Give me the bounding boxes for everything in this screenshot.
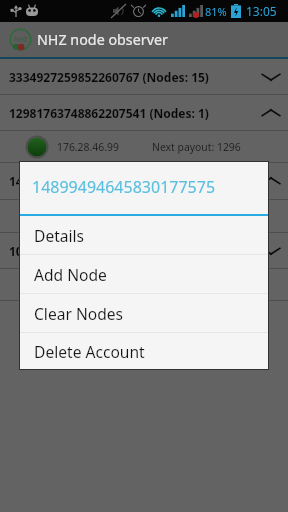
button[interactable]: Add Node	[20, 255, 268, 293]
other: Collapse	[260, 170, 282, 192]
staticText: 12981763748862207541 (Nodes: 1)	[9, 105, 209, 121]
button[interactable]: 176.28.46.99	[0, 131, 288, 162]
button[interactable]: Delete Account	[20, 333, 268, 369]
button[interactable]: 176.28.46.99	[0, 269, 288, 300]
staticText: Clear Nodes	[34, 303, 124, 324]
staticText: 176.28.46.99	[57, 278, 119, 292]
button[interactable]: Clear Nodes	[20, 294, 268, 332]
other: Expand	[260, 240, 282, 262]
staticText: 176.28.46.99	[57, 140, 119, 154]
button[interactable]: 176.28.46.99	[0, 200, 288, 232]
button[interactable]: 12981763748862207541 (Nodes: 1)	[0, 95, 288, 130]
other: Collapse	[260, 102, 282, 124]
staticText: 176.28.46.99	[57, 209, 119, 223]
staticText: 81%	[205, 4, 227, 19]
staticText: 13:05	[246, 3, 277, 19]
button[interactable]: 3334927259852260767 (Nodes: 15)	[0, 59, 288, 94]
staticText: NHZ node observer	[37, 30, 168, 49]
staticText: Next payout: 1296	[152, 209, 241, 223]
staticText: 14899494645830177575	[32, 176, 216, 198]
staticText: Add Node	[34, 264, 107, 285]
button[interactable]: 10928374650192837465 (Nodes: 4)	[0, 233, 288, 268]
staticText: 14899494645830177575 (Nodes: 1)	[9, 173, 209, 189]
other: Expand	[260, 66, 282, 88]
staticText: 10928374650192837465 (Nodes: 4)	[9, 243, 209, 259]
staticText: Delete Account	[34, 341, 145, 362]
button[interactable]: 14899494645830177575 (Nodes: 1)	[0, 163, 288, 199]
staticText: Next payout: 1296	[152, 140, 241, 154]
button[interactable]: Details	[20, 216, 268, 254]
staticText: NHZ	[14, 35, 28, 44]
staticText: Details	[34, 225, 85, 246]
staticText: 3334927259852260767 (Nodes: 15)	[9, 69, 209, 85]
